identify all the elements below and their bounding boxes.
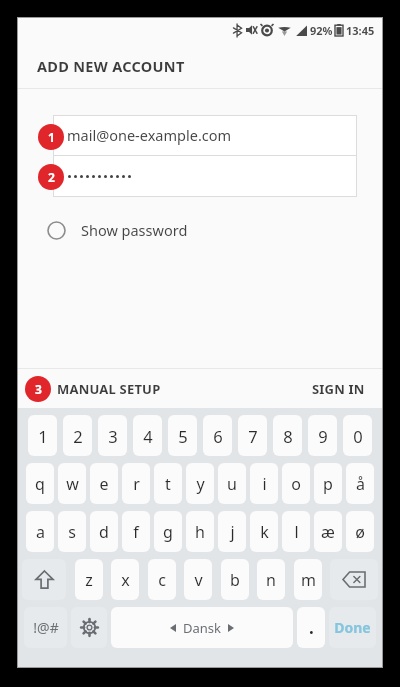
button[interactable]: o [282, 463, 310, 504]
staticText: u [227, 473, 237, 495]
button[interactable]: å [346, 463, 374, 504]
button[interactable]: g [154, 511, 182, 552]
button[interactable]: Keyboard settings [71, 607, 107, 648]
button[interactable]: 3 [98, 415, 127, 456]
staticText: 9 [318, 425, 328, 447]
button[interactable]: 8 [273, 415, 302, 456]
staticText: æ [321, 521, 335, 543]
button[interactable]: 1 [28, 415, 57, 456]
button[interactable]: p [314, 463, 342, 504]
button[interactable]: æ [314, 511, 342, 552]
button[interactable]: w [58, 463, 86, 504]
staticText: n [266, 569, 276, 591]
button[interactable]: 4 [133, 415, 162, 456]
button[interactable]: 7 [238, 415, 267, 456]
button[interactable]: 9 [308, 415, 337, 456]
button[interactable]: y [186, 463, 214, 504]
staticText: 1 [48, 129, 55, 145]
button[interactable]: z [75, 559, 103, 600]
staticText: 92% [310, 23, 333, 38]
staticText: mail@one-example.com [67, 125, 232, 145]
staticText: w [66, 473, 79, 495]
button[interactable]: !@# [24, 607, 67, 648]
button[interactable]: n [257, 559, 285, 600]
button[interactable]: m [294, 559, 322, 600]
button[interactable]: x [111, 559, 139, 600]
staticText: Dansk [183, 619, 221, 637]
staticText: i [262, 473, 267, 495]
button[interactable]: a [26, 511, 54, 552]
staticText: 2 [73, 425, 83, 447]
button[interactable]: j [218, 511, 246, 552]
staticText: q [35, 473, 45, 495]
staticText: 1 [38, 425, 48, 447]
button[interactable]: l [282, 511, 310, 552]
button[interactable]: ø [346, 511, 374, 552]
button[interactable]: f [122, 511, 150, 552]
button[interactable]: u [218, 463, 246, 504]
staticText: 3 [108, 425, 118, 447]
button[interactable]: k [250, 511, 278, 552]
staticText: 6 [213, 425, 223, 447]
staticText: b [230, 569, 240, 591]
staticText: SIGN IN [312, 380, 365, 398]
staticText: å [356, 473, 365, 495]
button[interactable]: Done [329, 607, 376, 648]
staticText: m [301, 569, 316, 591]
button[interactable]: mail@one-example.com [53, 115, 357, 155]
button[interactable]: . [297, 607, 325, 648]
button[interactable]: 0 [343, 415, 372, 456]
button[interactable]: Shift [22, 559, 66, 600]
staticText: s [68, 521, 76, 543]
staticText: g [163, 521, 173, 543]
button[interactable]: t [154, 463, 182, 504]
button[interactable]: 2 [63, 415, 92, 456]
staticText: e [99, 473, 109, 495]
staticText: t [165, 473, 171, 495]
button[interactable]: 5 [168, 415, 197, 456]
button[interactable]: 6 [203, 415, 232, 456]
button[interactable]: 3 [25, 369, 161, 408]
button[interactable]: h [186, 511, 214, 552]
staticText: 3 [35, 381, 42, 397]
button[interactable]: v [184, 559, 212, 600]
button[interactable]: SIGN IN [294, 369, 383, 408]
staticText: p [323, 473, 333, 495]
staticText: v [194, 569, 203, 591]
staticText: !@# [33, 618, 59, 637]
button[interactable]: c [148, 559, 176, 600]
button[interactable]: q [26, 463, 54, 504]
staticText: ø [355, 521, 365, 543]
staticText: Done [334, 618, 371, 637]
staticText: . [309, 616, 314, 639]
button[interactable]: r [122, 463, 150, 504]
staticText: c [158, 569, 166, 591]
button[interactable]: Show password [47, 213, 188, 247]
staticText: 13:45 [346, 23, 375, 38]
button[interactable]: i [250, 463, 278, 504]
staticText: o [291, 473, 301, 495]
staticText: Show password [81, 220, 188, 240]
staticText: k [260, 521, 269, 543]
staticText: MANUAL SETUP [57, 380, 161, 398]
button[interactable]: Space, Dansk [111, 607, 293, 648]
staticText: 8 [283, 425, 293, 447]
button[interactable]: b [221, 559, 249, 600]
staticText: 7 [248, 425, 258, 447]
staticText: d [99, 521, 109, 543]
staticText: 0 [353, 425, 363, 447]
staticText: l [294, 521, 299, 543]
staticText: f [133, 521, 139, 543]
staticText: a [36, 521, 45, 543]
staticText: 4 [143, 425, 153, 447]
button[interactable]: s [58, 511, 86, 552]
button[interactable]: Backspace [330, 559, 378, 600]
staticText: r [133, 473, 140, 495]
button[interactable]: d [90, 511, 118, 552]
button[interactable] [53, 156, 357, 197]
staticText: 5 [178, 425, 188, 447]
staticText: ADD NEW ACCOUNT [37, 56, 185, 76]
button[interactable]: e [90, 463, 118, 504]
staticText: z [85, 569, 93, 591]
staticText: 2 [48, 169, 55, 185]
